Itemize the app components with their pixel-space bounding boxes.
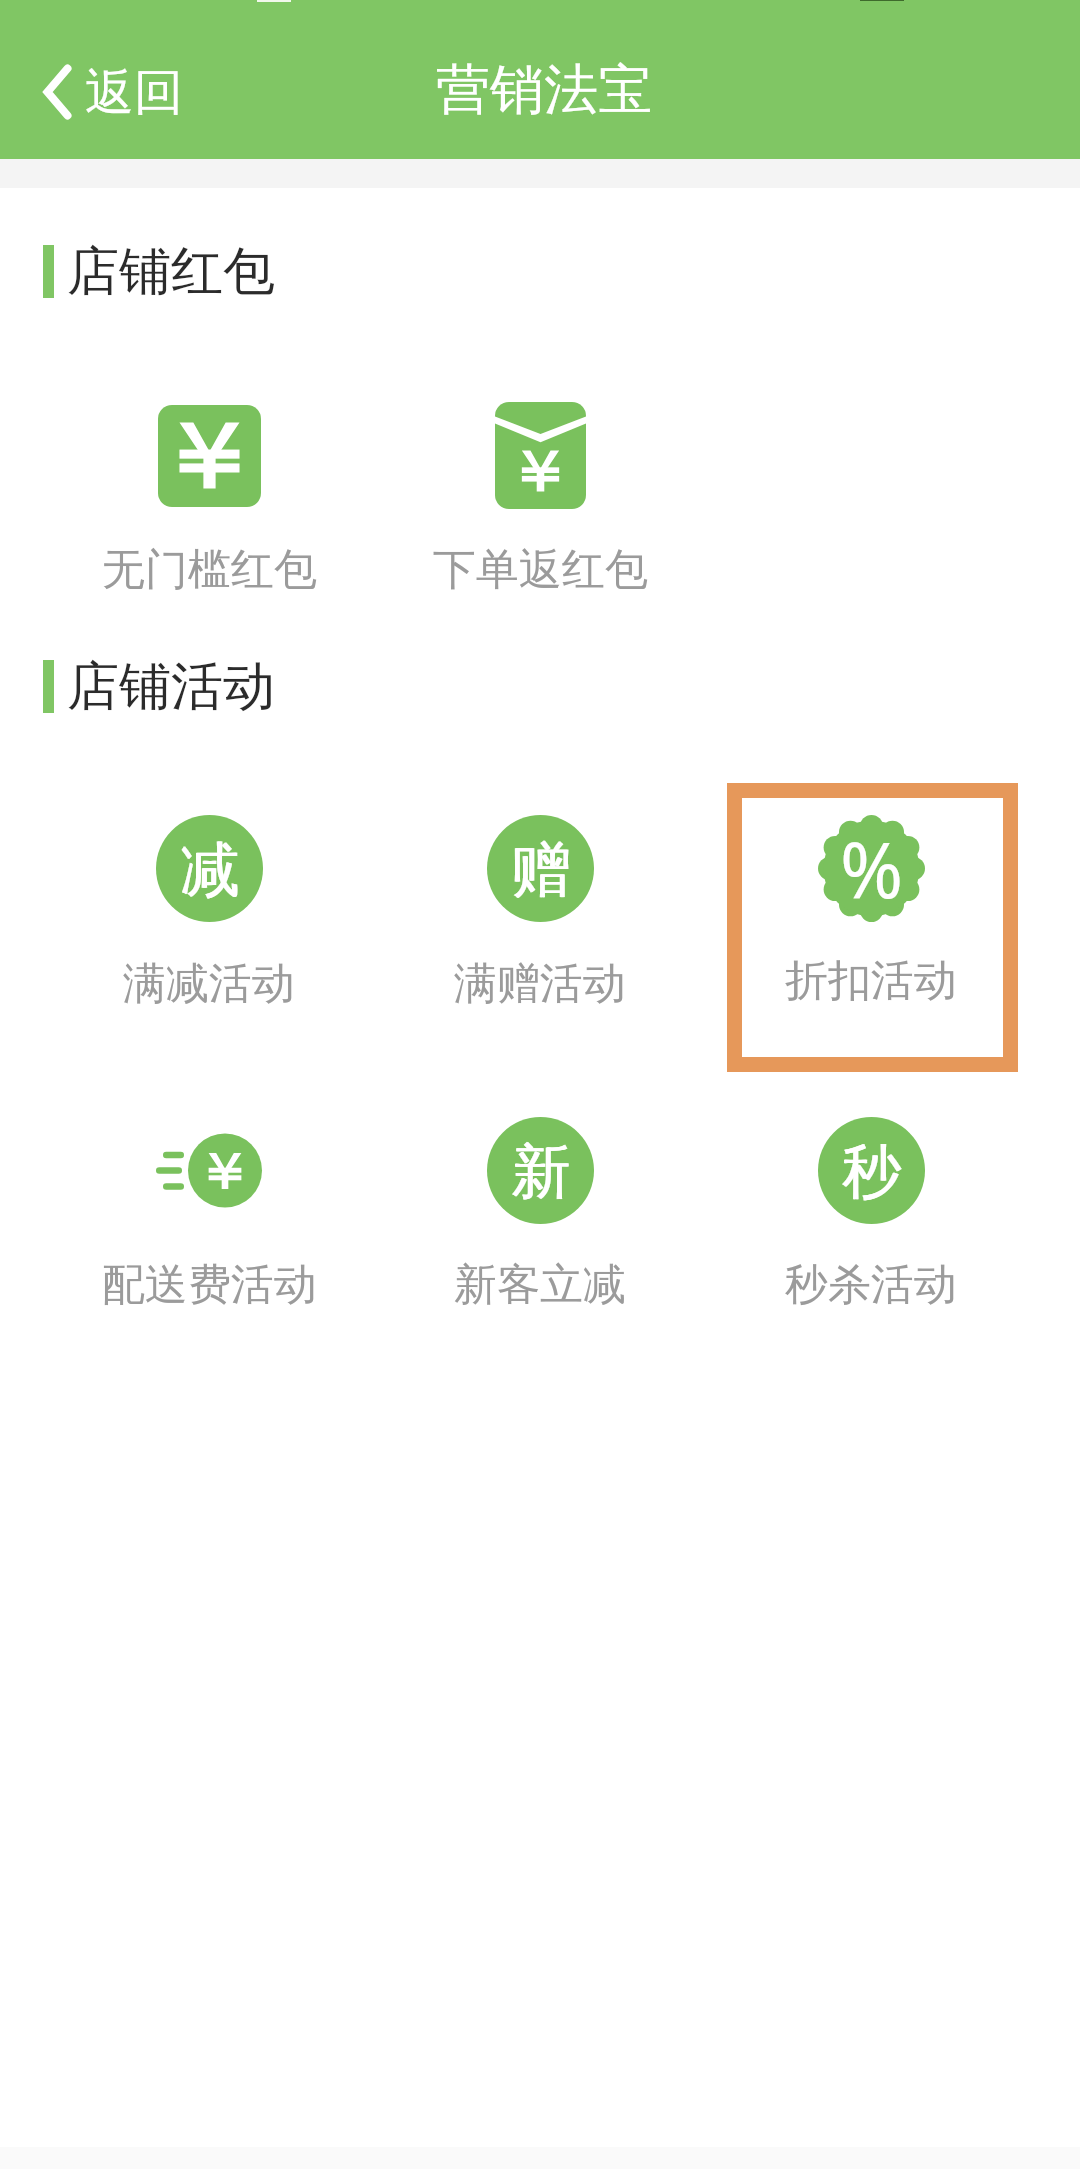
other: 赠 bbox=[487, 815, 594, 922]
staticText: 营销法宝 bbox=[436, 56, 652, 124]
staticText: 减 bbox=[180, 833, 239, 907]
button[interactable]: 店铺活动 bbox=[43, 660, 275, 726]
other: 秒 bbox=[818, 1117, 925, 1224]
button[interactable]: 折扣活动 bbox=[727, 783, 1018, 1072]
staticText: 秒杀活动 bbox=[785, 1258, 957, 1312]
other: 折扣活动 bbox=[818, 815, 925, 922]
other: 下单返红包 bbox=[495, 402, 586, 509]
button[interactable]: 下单返红包 bbox=[375, 384, 705, 605]
staticText: 秒 bbox=[842, 1135, 901, 1209]
staticText: 新客立减 bbox=[454, 1258, 626, 1312]
staticText: 满赠活动 bbox=[454, 957, 626, 1011]
button[interactable]: 赠 bbox=[375, 797, 705, 1019]
button[interactable]: 配送费活动 bbox=[44, 1099, 374, 1320]
staticText: 返回 bbox=[85, 62, 183, 124]
button[interactable]: 无门槛红包 bbox=[44, 387, 374, 605]
other: 无门槛红包 bbox=[158, 405, 261, 507]
staticText: 秒 bbox=[843, 1135, 902, 1209]
staticText: 下单返红包 bbox=[433, 543, 648, 597]
staticText: 减 bbox=[181, 833, 240, 907]
button[interactable]: 减 bbox=[44, 797, 374, 1019]
staticText: 店铺红包 bbox=[67, 239, 275, 305]
staticText: 满减活动 bbox=[123, 957, 295, 1011]
staticText: 配送费活动 bbox=[102, 1258, 317, 1312]
button[interactable]: 新 bbox=[375, 1099, 705, 1320]
staticText: % bbox=[840, 817, 904, 921]
staticText: 新 bbox=[511, 1135, 570, 1209]
staticText: 店铺活动 bbox=[67, 654, 275, 720]
other: 减 bbox=[156, 815, 263, 922]
staticText: 赠 bbox=[512, 833, 571, 907]
button[interactable]: 返回 bbox=[24, 47, 202, 137]
button[interactable]: 秒 bbox=[706, 1099, 1036, 1320]
other: 新 bbox=[487, 1117, 594, 1224]
staticText: 新 bbox=[512, 1135, 571, 1209]
staticText: 赠 bbox=[511, 833, 570, 907]
staticText: 无门槛红包 bbox=[102, 543, 317, 597]
button[interactable]: 店铺红包 bbox=[43, 245, 275, 311]
staticText: 折扣活动 bbox=[785, 954, 957, 1008]
other: 配送费活动 bbox=[156, 1117, 262, 1224]
